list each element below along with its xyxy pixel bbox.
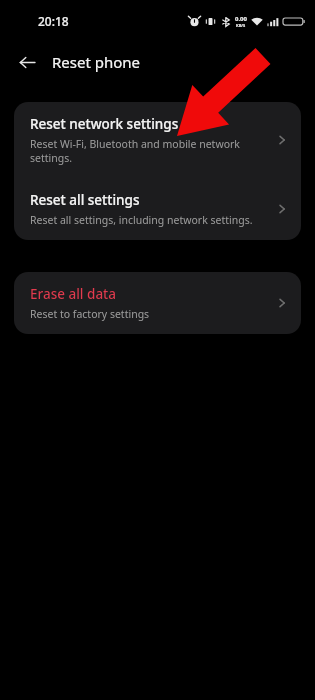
staticText: Reset phone — [52, 52, 141, 72]
button[interactable]: Erase all data — [14, 272, 301, 334]
button[interactable]: Reset network settings — [14, 102, 301, 178]
staticText: Reset network settings — [30, 115, 179, 133]
staticText: Reset Wi-Fi, Bluetooth and mobile networ… — [30, 137, 267, 165]
staticText: 20:18 — [38, 13, 69, 29]
staticText: Erase all data — [30, 285, 117, 303]
staticText: Reset all settings — [30, 191, 140, 209]
staticText: Reset all settings, including network se… — [30, 213, 253, 227]
staticText: KB/S — [236, 23, 246, 28]
button[interactable]: Back — [13, 48, 41, 76]
staticText: 0.00 — [235, 15, 247, 23]
staticText: Reset to factory settings — [30, 307, 150, 321]
button[interactable]: Reset all settings — [14, 178, 301, 240]
